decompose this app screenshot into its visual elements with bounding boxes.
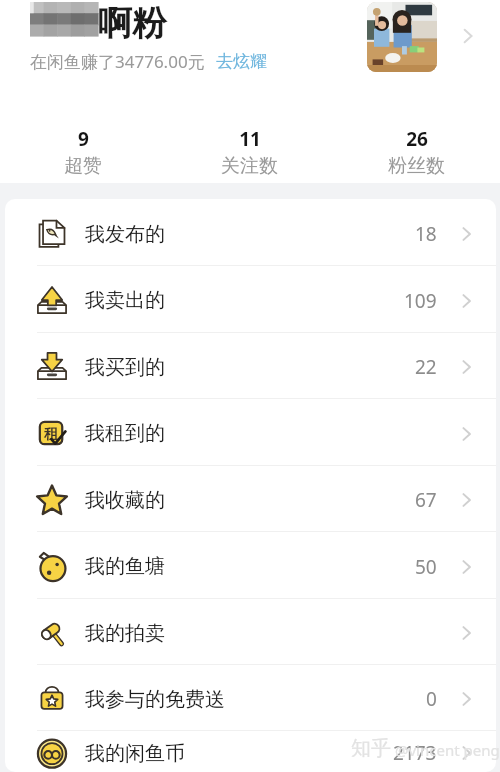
staticText: 关注数 (221, 154, 278, 178)
staticText: 知乎 (351, 736, 391, 761)
staticText: 18 (415, 221, 437, 247)
button[interactable]: More photos (458, 24, 482, 48)
button[interactable]: 我卖出的 (5, 265, 496, 332)
staticText: 我发布的 (85, 222, 165, 247)
staticText: 我卖出的 (85, 288, 165, 313)
staticText: @vincent peng (395, 740, 500, 760)
button[interactable]: 26 (333, 126, 500, 178)
staticText: 粉丝数 (388, 154, 445, 178)
staticText: 我的闲鱼币 (85, 741, 185, 766)
staticText: 超赞 (64, 154, 102, 178)
staticText: 我租到的 (85, 421, 165, 446)
staticText: 22 (415, 354, 437, 380)
button[interactable]: 我买到的 (5, 332, 496, 398)
button[interactable]: 我的拍卖 (5, 598, 496, 664)
staticText: 0 (426, 686, 437, 712)
staticText: 我的拍卖 (85, 621, 165, 646)
staticText: 109 (404, 288, 437, 314)
staticText: 我的鱼塘 (85, 554, 165, 579)
staticText: 26 (406, 126, 428, 152)
staticText: 11 (239, 126, 261, 152)
staticText: 啊粉 (98, 2, 166, 45)
staticText: 我买到的 (85, 355, 165, 380)
button[interactable]: 11 (166, 126, 333, 178)
staticText: 67 (415, 487, 437, 513)
button[interactable]: 去炫耀 (216, 49, 267, 74)
button[interactable]: 我收藏的 (5, 465, 496, 531)
staticText: 我收藏的 (85, 488, 165, 513)
staticText: 租 (44, 425, 59, 444)
button[interactable]: 9 (0, 126, 166, 178)
button[interactable]: 我发布的 (5, 199, 496, 265)
staticText: 50 (415, 554, 437, 580)
staticText: 9 (78, 126, 89, 152)
button[interactable]: 我的鱼塘 (5, 531, 496, 598)
staticText: 我参与的免费送 (85, 687, 225, 712)
button[interactable]: Photo (367, 2, 437, 72)
staticText: 2173 (393, 740, 437, 766)
staticText: 去炫耀 (216, 51, 267, 72)
button[interactable]: 租 (5, 398, 496, 465)
button[interactable]: 我的闲鱼币 (5, 730, 496, 772)
button[interactable]: 我参与的免费送 (5, 664, 496, 730)
staticText: 在闲鱼赚了34776.00元 (30, 50, 205, 73)
